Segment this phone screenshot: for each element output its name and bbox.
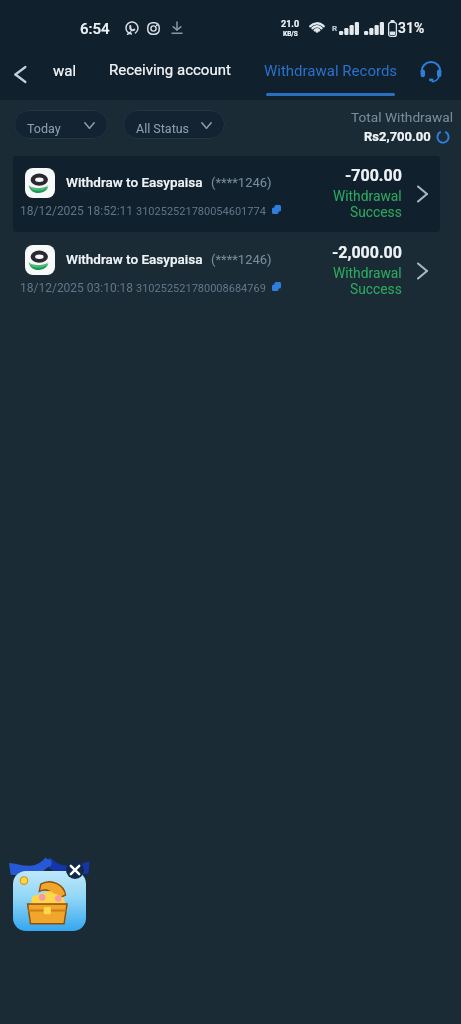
staticText: 18/12/2025 03:10:18 [20,281,134,295]
button[interactable]: Open treasure reward [13,871,86,931]
staticText: Total Withdrawal [332,109,453,125]
staticText: Withdraw to Easypaisa [66,174,203,190]
staticText: Success [350,281,402,297]
staticText: Today [27,121,61,136]
staticText: Withdrawal Records [264,62,398,80]
button[interactable]: Refresh [436,130,450,144]
staticText: R [332,24,338,33]
button[interactable]: Withdraw to Easypaisa [13,233,440,309]
button[interactable]: Customer support [406,46,456,98]
staticText: Withdrawal [333,188,402,204]
button[interactable]: Withdrawal Records [256,48,405,100]
button[interactable]: Receiving account [98,48,241,100]
staticText: 310252521780054601774 [136,205,266,218]
button[interactable]: Withdraw to Easypaisa [13,156,440,232]
button[interactable]: Back [5,48,35,100]
staticText: (****1246) [211,252,272,267]
staticText: Success [350,204,402,220]
staticText: Receiving account [109,61,231,79]
staticText: Withdraw to Easypaisa [66,251,203,267]
button[interactable]: All Status [123,110,225,139]
staticText: 18/12/2025 18:52:11 [20,204,134,218]
button[interactable]: wal [40,48,90,100]
other: Open record details [411,180,433,208]
staticText: 21.0 [281,19,300,30]
staticText: -2,000.00 [332,243,402,262]
other: Open record details [411,257,433,285]
staticText: All Status [136,121,190,136]
staticText: KB/S [283,30,298,38]
button[interactable]: Copy order id [272,205,281,214]
staticText: Rs2,700.00 [364,129,431,144]
staticText: 6:54 [80,20,110,38]
staticText: wal [53,62,77,80]
button[interactable]: Close [66,861,84,879]
staticText: 310252521780008684769 [136,282,266,295]
button[interactable]: Today [14,110,108,139]
staticText: -700.00 [345,166,402,185]
staticText: (****1246) [211,175,272,190]
staticText: 31% [398,20,425,36]
staticText: Withdrawal [333,265,402,281]
button[interactable]: Copy order id [272,282,281,291]
